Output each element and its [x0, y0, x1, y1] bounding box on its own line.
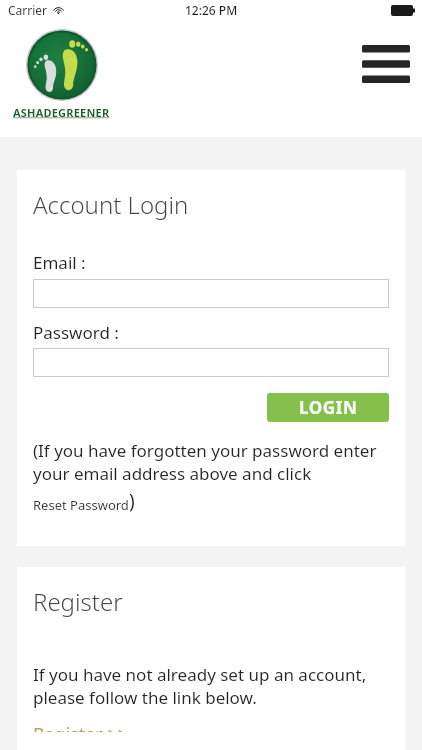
staticText: Email : — [33, 251, 86, 274]
staticText: Reset Password — [33, 496, 129, 514]
staticText: Account Login — [33, 188, 189, 221]
button[interactable]: Reset Password — [33, 496, 129, 514]
button[interactable]: Register >> — [33, 722, 129, 732]
staticText: ) — [129, 488, 135, 514]
staticText: please follow the link below. — [33, 686, 257, 709]
staticText: Register — [33, 585, 123, 618]
button[interactable]: Menu — [356, 34, 416, 94]
staticText: If you have not already set up an accoun… — [33, 663, 367, 686]
button[interactable]: LOGIN — [267, 393, 389, 422]
staticText: ASHADEGREENER — [13, 105, 110, 120]
button[interactable] — [33, 348, 389, 377]
staticText: 12:26 PM — [185, 2, 238, 18]
staticText: (If you have forgotten your password ent… — [33, 439, 377, 462]
staticText: your email address above and click — [33, 462, 312, 485]
staticText: Carrier — [8, 2, 48, 18]
button[interactable]: ASHADEGREENER — [13, 29, 110, 120]
staticText: LOGIN — [299, 396, 358, 419]
button[interactable] — [33, 279, 389, 308]
staticText: Register >> — [33, 722, 129, 732]
staticText: Password : — [33, 321, 119, 344]
